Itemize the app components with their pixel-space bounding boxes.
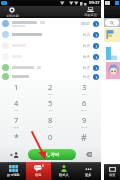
button[interactable]: 08:47 bbox=[0, 18, 101, 29]
button[interactable]: Call details bbox=[93, 21, 99, 27]
staticText: 昨天 bbox=[83, 75, 90, 79]
button[interactable] bbox=[104, 28, 120, 42]
button[interactable]: # bbox=[67, 130, 101, 147]
button[interactable]: 4 bbox=[0, 96, 33, 113]
staticText: PQRS bbox=[13, 125, 20, 128]
staticText: + bbox=[50, 142, 52, 145]
button[interactable]: 8 bbox=[33, 113, 67, 130]
button[interactable]: Call details bbox=[93, 54, 99, 60]
button[interactable]: 9 bbox=[67, 113, 101, 130]
staticText: 09:37 bbox=[89, 0, 100, 6]
staticText: 6 bbox=[42, 164, 44, 168]
staticText: 0 bbox=[48, 132, 53, 142]
button[interactable]: 昨天 bbox=[0, 40, 101, 51]
staticText: 6 bbox=[82, 98, 87, 108]
staticText: 5 bbox=[48, 98, 53, 108]
button[interactable]: Add contact bbox=[0, 147, 28, 162]
button[interactable]: 昨天 bbox=[0, 62, 101, 73]
staticText: 2 bbox=[48, 82, 53, 92]
staticText: 1 bbox=[14, 82, 19, 92]
staticText: 昨天 bbox=[83, 55, 90, 59]
button[interactable]: 昨天 bbox=[0, 73, 101, 80]
button[interactable]: 6 bbox=[67, 96, 101, 113]
staticText: 更多 bbox=[85, 173, 92, 177]
staticText: 昨天 bbox=[83, 66, 90, 70]
button[interactable]: 5 bbox=[33, 96, 67, 113]
button[interactable]: 更多 bbox=[76, 162, 101, 180]
button[interactable]: Call details bbox=[93, 32, 99, 38]
staticText: MNO bbox=[81, 108, 87, 111]
staticText: DEF bbox=[82, 92, 87, 95]
button[interactable]: 2 bbox=[33, 80, 67, 96]
staticText: WXYZ bbox=[81, 125, 88, 128]
staticText: 手机防盗 bbox=[6, 14, 19, 18]
staticText: 昨天 bbox=[83, 44, 90, 48]
staticText: 流量监控 bbox=[84, 13, 97, 17]
button[interactable]: 3 bbox=[67, 80, 101, 96]
staticText: 3 bbox=[82, 82, 87, 92]
button[interactable]: 呼叫 bbox=[28, 149, 76, 160]
staticText: 7 bbox=[14, 115, 19, 125]
staticText: * bbox=[14, 131, 19, 143]
button[interactable]: Call details bbox=[93, 43, 99, 49]
button[interactable]: 昨天 bbox=[0, 29, 101, 40]
staticText: 昨天 bbox=[83, 33, 90, 37]
button[interactable]: 7 bbox=[0, 113, 33, 130]
staticText: 4 bbox=[14, 98, 19, 108]
staticText: 信息 bbox=[35, 173, 42, 177]
button[interactable]: 6 bbox=[26, 162, 51, 180]
staticText: TUV bbox=[48, 125, 53, 128]
staticText: 首页 bbox=[109, 173, 116, 177]
button[interactable] bbox=[106, 62, 120, 79]
button[interactable]: 首页 bbox=[104, 164, 120, 180]
staticText: 9 bbox=[82, 115, 87, 125]
staticText: ABC bbox=[48, 92, 53, 95]
button[interactable]: Call details bbox=[93, 74, 99, 80]
button[interactable]: 1 bbox=[0, 80, 33, 96]
button[interactable]: 联系人 bbox=[51, 162, 76, 180]
button[interactable]: * bbox=[0, 130, 33, 147]
staticText: 联系人 bbox=[59, 173, 69, 177]
staticText: # bbox=[81, 131, 87, 143]
staticText: 拨号键盘 bbox=[7, 173, 20, 177]
button[interactable]: 昨天 bbox=[0, 51, 101, 62]
staticText: JKL bbox=[49, 108, 53, 111]
button[interactable]: 0 bbox=[33, 130, 67, 147]
button[interactable]: Search bbox=[105, 19, 119, 26]
staticText: 8 bbox=[48, 115, 53, 125]
staticText: 呼叫 bbox=[51, 152, 60, 157]
staticText: 08:47 bbox=[81, 21, 90, 26]
button[interactable]: Backspace bbox=[76, 147, 101, 162]
button[interactable]: 拨号键盘 bbox=[0, 162, 26, 180]
button[interactable]: Call details bbox=[93, 65, 99, 71]
staticText: GHI bbox=[14, 108, 19, 111]
